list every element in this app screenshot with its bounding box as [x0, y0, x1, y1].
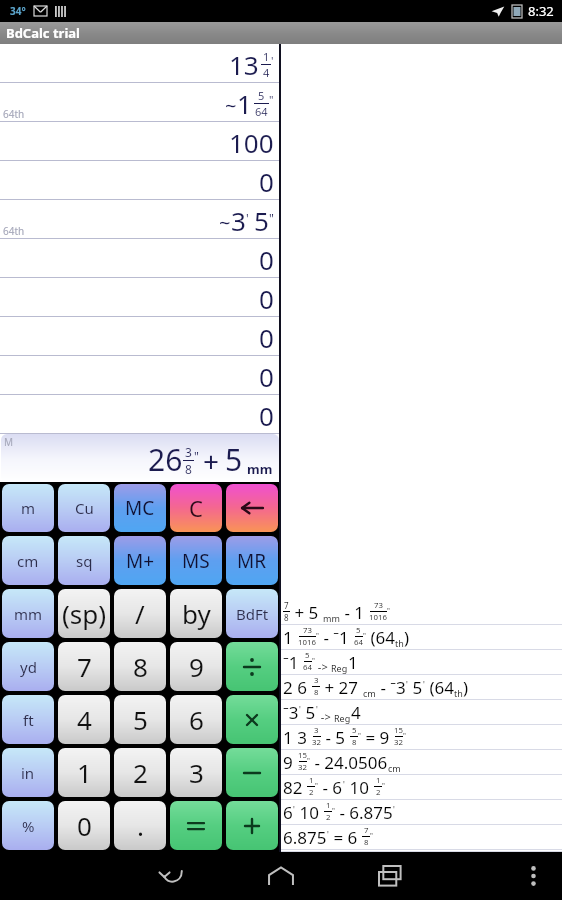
- staticText: 5: [301, 701, 316, 724]
- button[interactable]: 1: [280, 625, 562, 650]
- staticText: 5: [356, 625, 361, 636]
- button[interactable]: C: [170, 484, 222, 532]
- staticText: by: [182, 596, 211, 631]
- staticText: th: [395, 637, 404, 649]
- button[interactable]: /: [114, 589, 166, 638]
- button[interactable]: 0: [0, 395, 280, 434]
- button[interactable]: m: [2, 484, 54, 532]
- button[interactable]: 7: [280, 600, 562, 625]
- staticText: ~: [225, 92, 237, 119]
- staticText: 9: [283, 751, 298, 774]
- button[interactable]: (sp): [58, 589, 110, 638]
- staticText: 8:32: [528, 2, 554, 20]
- button[interactable]: 100: [0, 122, 280, 161]
- other: Equals: [185, 819, 207, 833]
- button[interactable]: 6: [170, 695, 222, 744]
- staticText: 2: [326, 812, 331, 823]
- button[interactable]: M+: [114, 536, 166, 585]
- button[interactable]: 0: [0, 278, 280, 317]
- button[interactable]: 9: [280, 750, 562, 775]
- staticText: ": [403, 730, 406, 740]
- button[interactable]: 8: [114, 642, 166, 691]
- button[interactable]: 4: [58, 695, 110, 744]
- button[interactable]: .: [114, 801, 166, 850]
- button[interactable]: BdFt: [226, 589, 278, 638]
- staticText: 3: [189, 755, 204, 790]
- button[interactable]: Multiply: [226, 695, 278, 744]
- staticText: 7: [364, 825, 369, 836]
- other: Multiply: [242, 710, 262, 730]
- button[interactable]: Home: [260, 855, 302, 897]
- button[interactable]: 6: [280, 800, 562, 825]
- button[interactable]: ft: [2, 695, 54, 744]
- button[interactable]: %: [2, 801, 54, 850]
- button[interactable]: 82: [280, 775, 562, 800]
- button[interactable]: Back: [150, 855, 192, 897]
- staticText: .: [137, 808, 144, 843]
- button[interactable]: Recent apps: [370, 855, 412, 897]
- button[interactable]: 1: [58, 748, 110, 797]
- staticText: ': [271, 53, 274, 68]
- staticText: ": [307, 755, 310, 765]
- button[interactable]: MR: [226, 536, 278, 585]
- other: Plus: [241, 815, 263, 837]
- staticText: ": [382, 780, 385, 790]
- button[interactable]: in: [2, 748, 54, 797]
- staticText: 1: [77, 755, 92, 790]
- button[interactable]: Equals: [170, 801, 222, 850]
- button[interactable]: More options: [516, 859, 550, 893]
- button[interactable]: by: [170, 589, 222, 638]
- staticText: 10: [345, 776, 374, 799]
- staticText: MC: [125, 495, 155, 521]
- staticText: - ⁻3: [376, 676, 406, 699]
- button[interactable]: Cu: [58, 484, 110, 532]
- staticText: 0: [259, 359, 274, 394]
- staticText: ': [246, 210, 249, 226]
- button[interactable]: 2: [114, 748, 166, 797]
- button[interactable]: 0: [0, 239, 280, 278]
- button[interactable]: 2 6: [280, 675, 562, 700]
- button[interactable]: mm: [2, 589, 54, 638]
- staticText: 3: [314, 725, 319, 736]
- staticText: = 9: [361, 726, 394, 749]
- button[interactable]: 7: [58, 642, 110, 691]
- button[interactable]: Backspace: [226, 484, 278, 532]
- button[interactable]: ⁻1: [280, 650, 562, 675]
- staticText: 8: [185, 461, 192, 477]
- staticText: 64th: [3, 224, 25, 238]
- staticText: 6.875: [283, 826, 327, 849]
- button[interactable]: 0: [0, 161, 280, 200]
- button[interactable]: 64th: [0, 200, 280, 239]
- button[interactable]: 5: [114, 695, 166, 744]
- button[interactable]: Plus: [226, 801, 278, 850]
- button[interactable]: Minus: [226, 748, 278, 797]
- button[interactable]: 13: [0, 44, 280, 83]
- button[interactable]: 0: [0, 356, 280, 395]
- staticText: +: [203, 442, 220, 480]
- other: Minus: [241, 767, 263, 779]
- staticText: ⁻1: [283, 651, 303, 674]
- button[interactable]: 3: [170, 748, 222, 797]
- staticText: ': [406, 679, 408, 690]
- button[interactable]: ⁻3: [280, 700, 562, 725]
- button[interactable]: Divide: [226, 642, 278, 691]
- button[interactable]: MC: [114, 484, 166, 532]
- button[interactable]: yd: [2, 642, 54, 691]
- staticText: ': [293, 804, 295, 815]
- staticText: 0: [259, 320, 274, 355]
- button[interactable]: 6.875: [280, 825, 562, 850]
- staticText: 1: [348, 651, 358, 674]
- button[interactable]: M: [1, 434, 279, 482]
- staticText: 0: [259, 242, 274, 277]
- button[interactable]: MS: [170, 536, 222, 585]
- button[interactable]: 6: [280, 850, 562, 852]
- staticText: cm: [17, 551, 39, 571]
- button[interactable]: 0: [58, 801, 110, 850]
- staticText: ft: [23, 710, 34, 730]
- button[interactable]: 64th: [0, 83, 280, 122]
- button[interactable]: sq: [58, 536, 110, 585]
- button[interactable]: cm: [2, 536, 54, 585]
- button[interactable]: 0: [0, 317, 280, 356]
- button[interactable]: 1 3: [280, 725, 562, 750]
- button[interactable]: 9: [170, 642, 222, 691]
